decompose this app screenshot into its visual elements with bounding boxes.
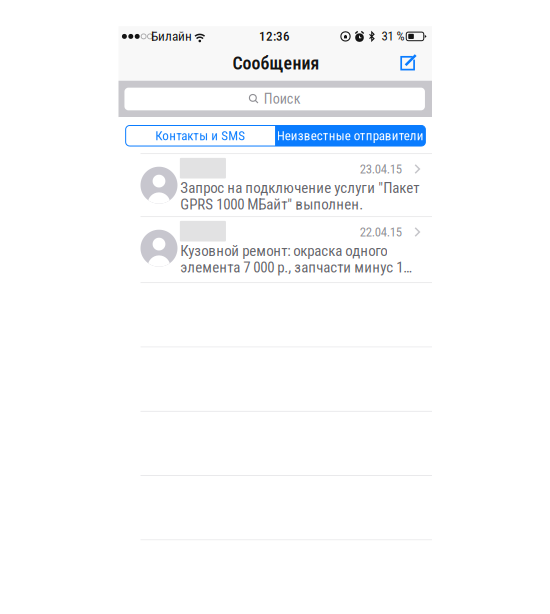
staticText: Кузовной ремонт: окраска одного bbox=[180, 242, 387, 259]
staticText: Запрос на подключение услуги "Пакет bbox=[180, 179, 419, 196]
button[interactable]: Неизвестные отправители bbox=[275, 125, 425, 146]
staticText: элемента 7 000 р., запчасти минус 1… bbox=[180, 259, 412, 276]
button[interactable]: Новое сообщение bbox=[393, 47, 425, 78]
staticText: 12:36 bbox=[259, 28, 290, 44]
staticText: GPRS 1000 МБайт" выполнен. bbox=[180, 196, 363, 213]
staticText: Билайн bbox=[151, 28, 192, 44]
staticText: 22.04.15 bbox=[360, 224, 402, 239]
staticText: Неизвестные отправители bbox=[277, 128, 424, 143]
button[interactable]: Поиск bbox=[124, 88, 425, 110]
staticText: Поиск bbox=[264, 91, 301, 107]
staticText: Контакты и SMS bbox=[155, 128, 245, 143]
staticText: 31 % bbox=[381, 29, 404, 44]
button[interactable]: 23.04.15 bbox=[118, 154, 432, 216]
staticText: Сообщения bbox=[232, 53, 319, 74]
button[interactable]: 22.04.15 bbox=[118, 217, 432, 282]
button[interactable]: Контакты и SMS bbox=[126, 125, 275, 146]
staticText: 23.04.15 bbox=[360, 161, 402, 176]
